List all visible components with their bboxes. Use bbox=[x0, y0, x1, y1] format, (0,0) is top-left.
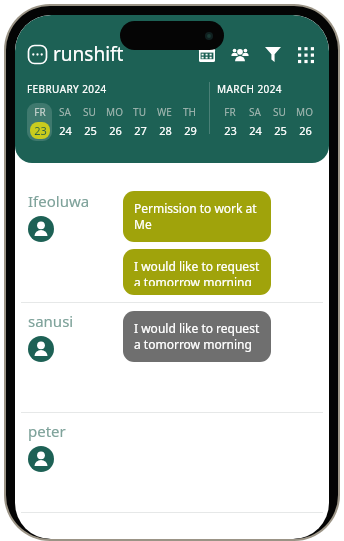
staticText: FEBRUARY 2024 bbox=[27, 82, 107, 96]
staticText: I would like to request a tomorrow morni… bbox=[134, 320, 260, 353]
button[interactable]: SU bbox=[77, 103, 102, 141]
staticText: 26 bbox=[299, 123, 312, 138]
staticText: 24 bbox=[249, 123, 262, 138]
button[interactable]: SU bbox=[267, 103, 292, 141]
button[interactable]: TH bbox=[177, 103, 202, 141]
staticText: TH bbox=[183, 105, 196, 119]
staticText: 25 bbox=[274, 123, 287, 138]
button[interactable]: I would like to request a tomorrow morni… bbox=[123, 311, 271, 362]
button[interactable]: Apps bbox=[294, 42, 318, 66]
button[interactable]: peter bbox=[15, 413, 329, 512]
button[interactable]: MO bbox=[102, 103, 127, 141]
staticText: 26 bbox=[109, 123, 122, 138]
staticText: 24 bbox=[59, 123, 72, 138]
button[interactable]: FR bbox=[217, 103, 242, 141]
staticText: 29 bbox=[184, 123, 197, 138]
staticText: MARCH 2024 bbox=[217, 82, 282, 96]
button[interactable]: sanusi bbox=[15, 303, 329, 412]
staticText: SU bbox=[83, 105, 96, 119]
button[interactable]: TU bbox=[127, 103, 152, 141]
staticText: 23 bbox=[34, 123, 47, 138]
button[interactable]: Ifeoluwa bbox=[15, 183, 329, 302]
button[interactable]: SA bbox=[242, 103, 267, 141]
staticText: 27 bbox=[134, 123, 147, 138]
staticText: runshift bbox=[53, 41, 124, 67]
button[interactable]: FR bbox=[27, 103, 52, 141]
button[interactable]: Calendar bbox=[195, 42, 219, 66]
staticText: SU bbox=[273, 105, 286, 119]
button[interactable]: MO bbox=[292, 103, 317, 141]
staticText: SA bbox=[59, 105, 71, 119]
staticText: FR bbox=[224, 105, 236, 119]
staticText: MO bbox=[296, 105, 313, 119]
staticText: TU bbox=[133, 105, 146, 119]
staticText: FR bbox=[34, 105, 46, 119]
staticText: Ifeoluwa bbox=[28, 191, 90, 211]
staticText: 28 bbox=[159, 123, 172, 138]
staticText: 25 bbox=[84, 123, 97, 138]
button[interactable]: People bbox=[228, 42, 252, 66]
button[interactable]: Filter bbox=[261, 42, 285, 66]
staticText: sanusi bbox=[28, 311, 74, 331]
staticText: SA bbox=[249, 105, 261, 119]
button[interactable]: runshift bbox=[27, 41, 124, 67]
staticText: WE bbox=[157, 105, 172, 119]
staticText: MO bbox=[106, 105, 123, 119]
button[interactable]: SA bbox=[52, 103, 77, 141]
button[interactable]: WE bbox=[152, 103, 177, 141]
staticText: 23 bbox=[224, 123, 237, 138]
button[interactable]: Permission to work at Me bbox=[123, 191, 271, 242]
staticText: peter bbox=[28, 421, 66, 441]
button[interactable]: I would like to request a tomorrow morni… bbox=[123, 249, 271, 295]
staticText: Permission to work at Me bbox=[134, 200, 260, 233]
staticText: I would like to request a tomorrow morni… bbox=[134, 258, 260, 286]
